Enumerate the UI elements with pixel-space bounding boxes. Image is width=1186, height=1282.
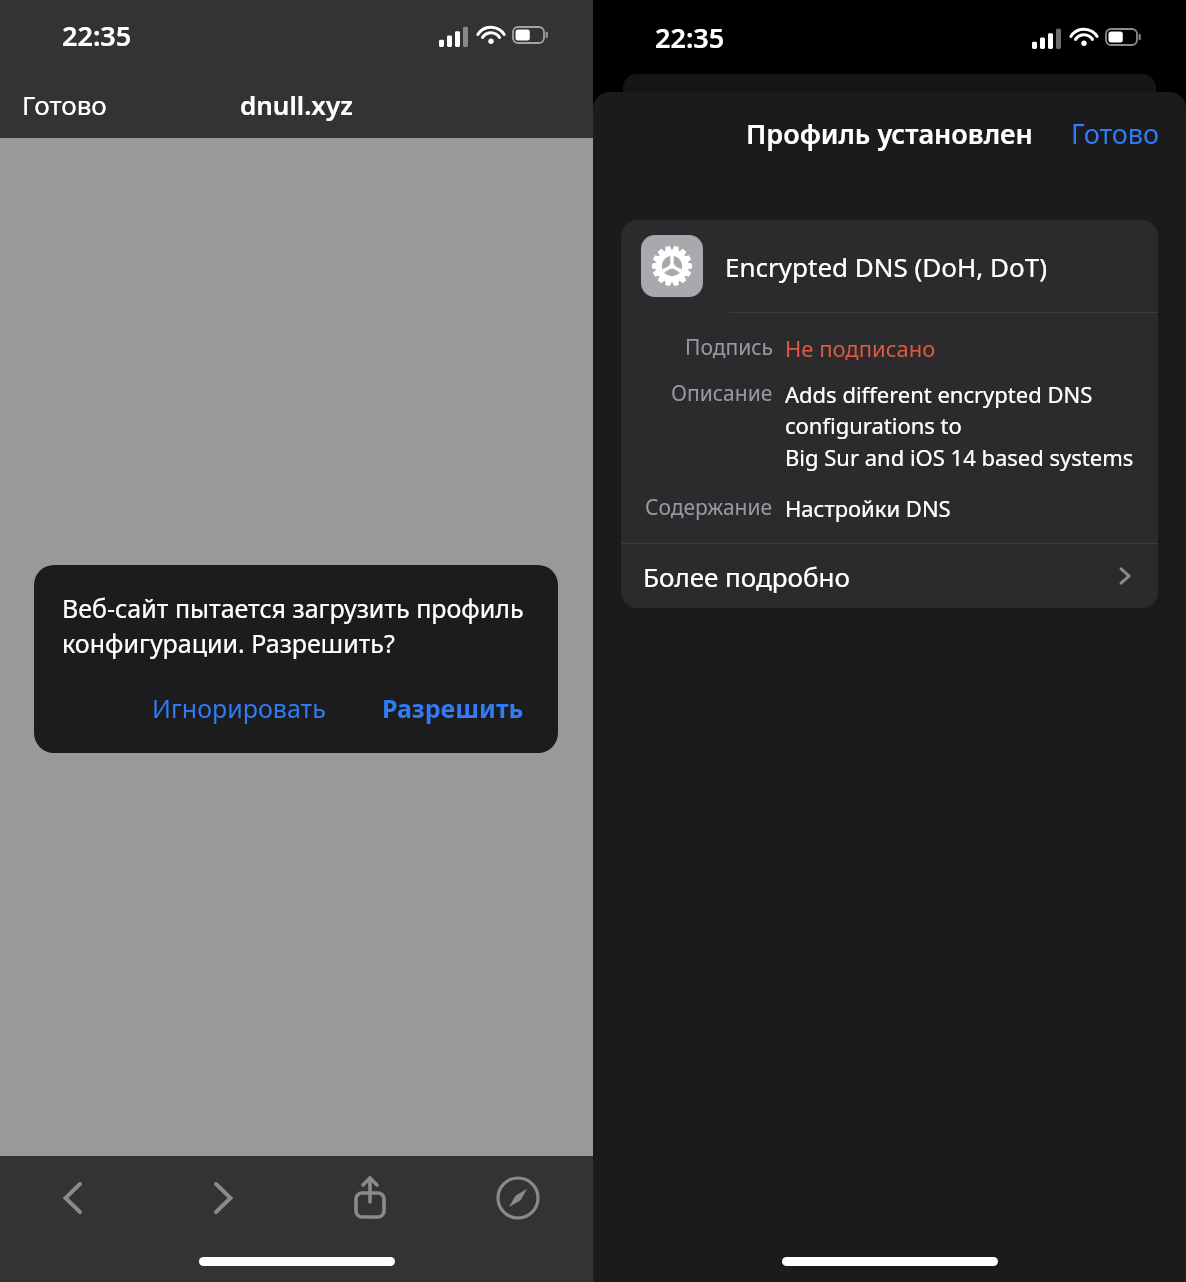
staticText: Профиль установлен <box>746 115 1033 152</box>
staticText: Веб-сайт пытается загрузить профиль конф… <box>62 591 524 661</box>
staticText: 22:35 <box>62 17 132 54</box>
button[interactable]: Готово <box>1063 109 1168 158</box>
staticText: Настройки DNS <box>785 493 951 523</box>
button[interactable]: Назад <box>0 1156 148 1240</box>
button[interactable]: Вперёд <box>148 1156 296 1240</box>
button[interactable]: Разрешить <box>376 685 530 731</box>
staticText: Encrypted DNS (DoH, DoT) <box>725 249 1048 284</box>
button[interactable]: Игнорировать <box>146 685 332 731</box>
button[interactable]: Поделиться <box>296 1156 444 1240</box>
button[interactable]: Более подробно <box>621 544 1158 608</box>
staticText: Содержание <box>645 493 773 522</box>
staticText: Более подробно <box>643 559 850 594</box>
button[interactable]: Готово <box>14 81 115 128</box>
staticText: Подпись <box>685 333 773 362</box>
button[interactable]: Вкладки <box>444 1156 592 1240</box>
staticText: Описание <box>671 379 773 408</box>
staticText: dnull.xyz <box>240 87 353 122</box>
staticText: Adds different encrypted DNS configurati… <box>785 379 1138 473</box>
staticText: Не подписано <box>785 333 936 363</box>
staticText: 22:35 <box>655 19 725 56</box>
